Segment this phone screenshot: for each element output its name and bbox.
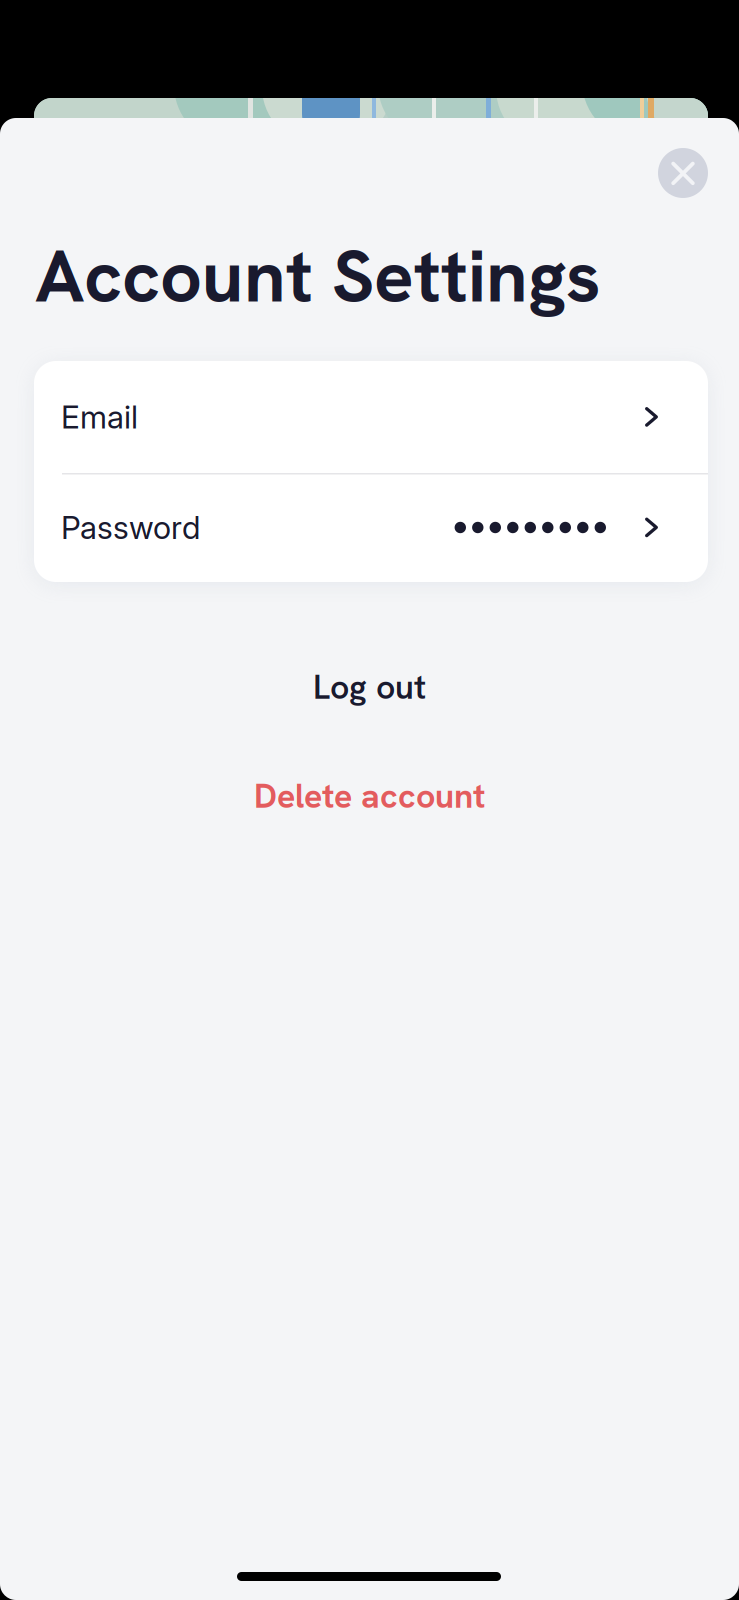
button[interactable]: Log out — [0, 649, 739, 725]
staticText: Account Settings — [35, 228, 601, 324]
button[interactable]: Email — [34, 361, 708, 473]
staticText: Delete account — [254, 774, 485, 818]
button[interactable]: Password — [34, 473, 708, 582]
button[interactable]: Close — [658, 148, 708, 198]
button[interactable]: Delete account — [0, 758, 739, 834]
staticText: Password — [61, 508, 200, 547]
staticText: Log out — [313, 665, 426, 709]
staticText: Email — [61, 398, 138, 436]
